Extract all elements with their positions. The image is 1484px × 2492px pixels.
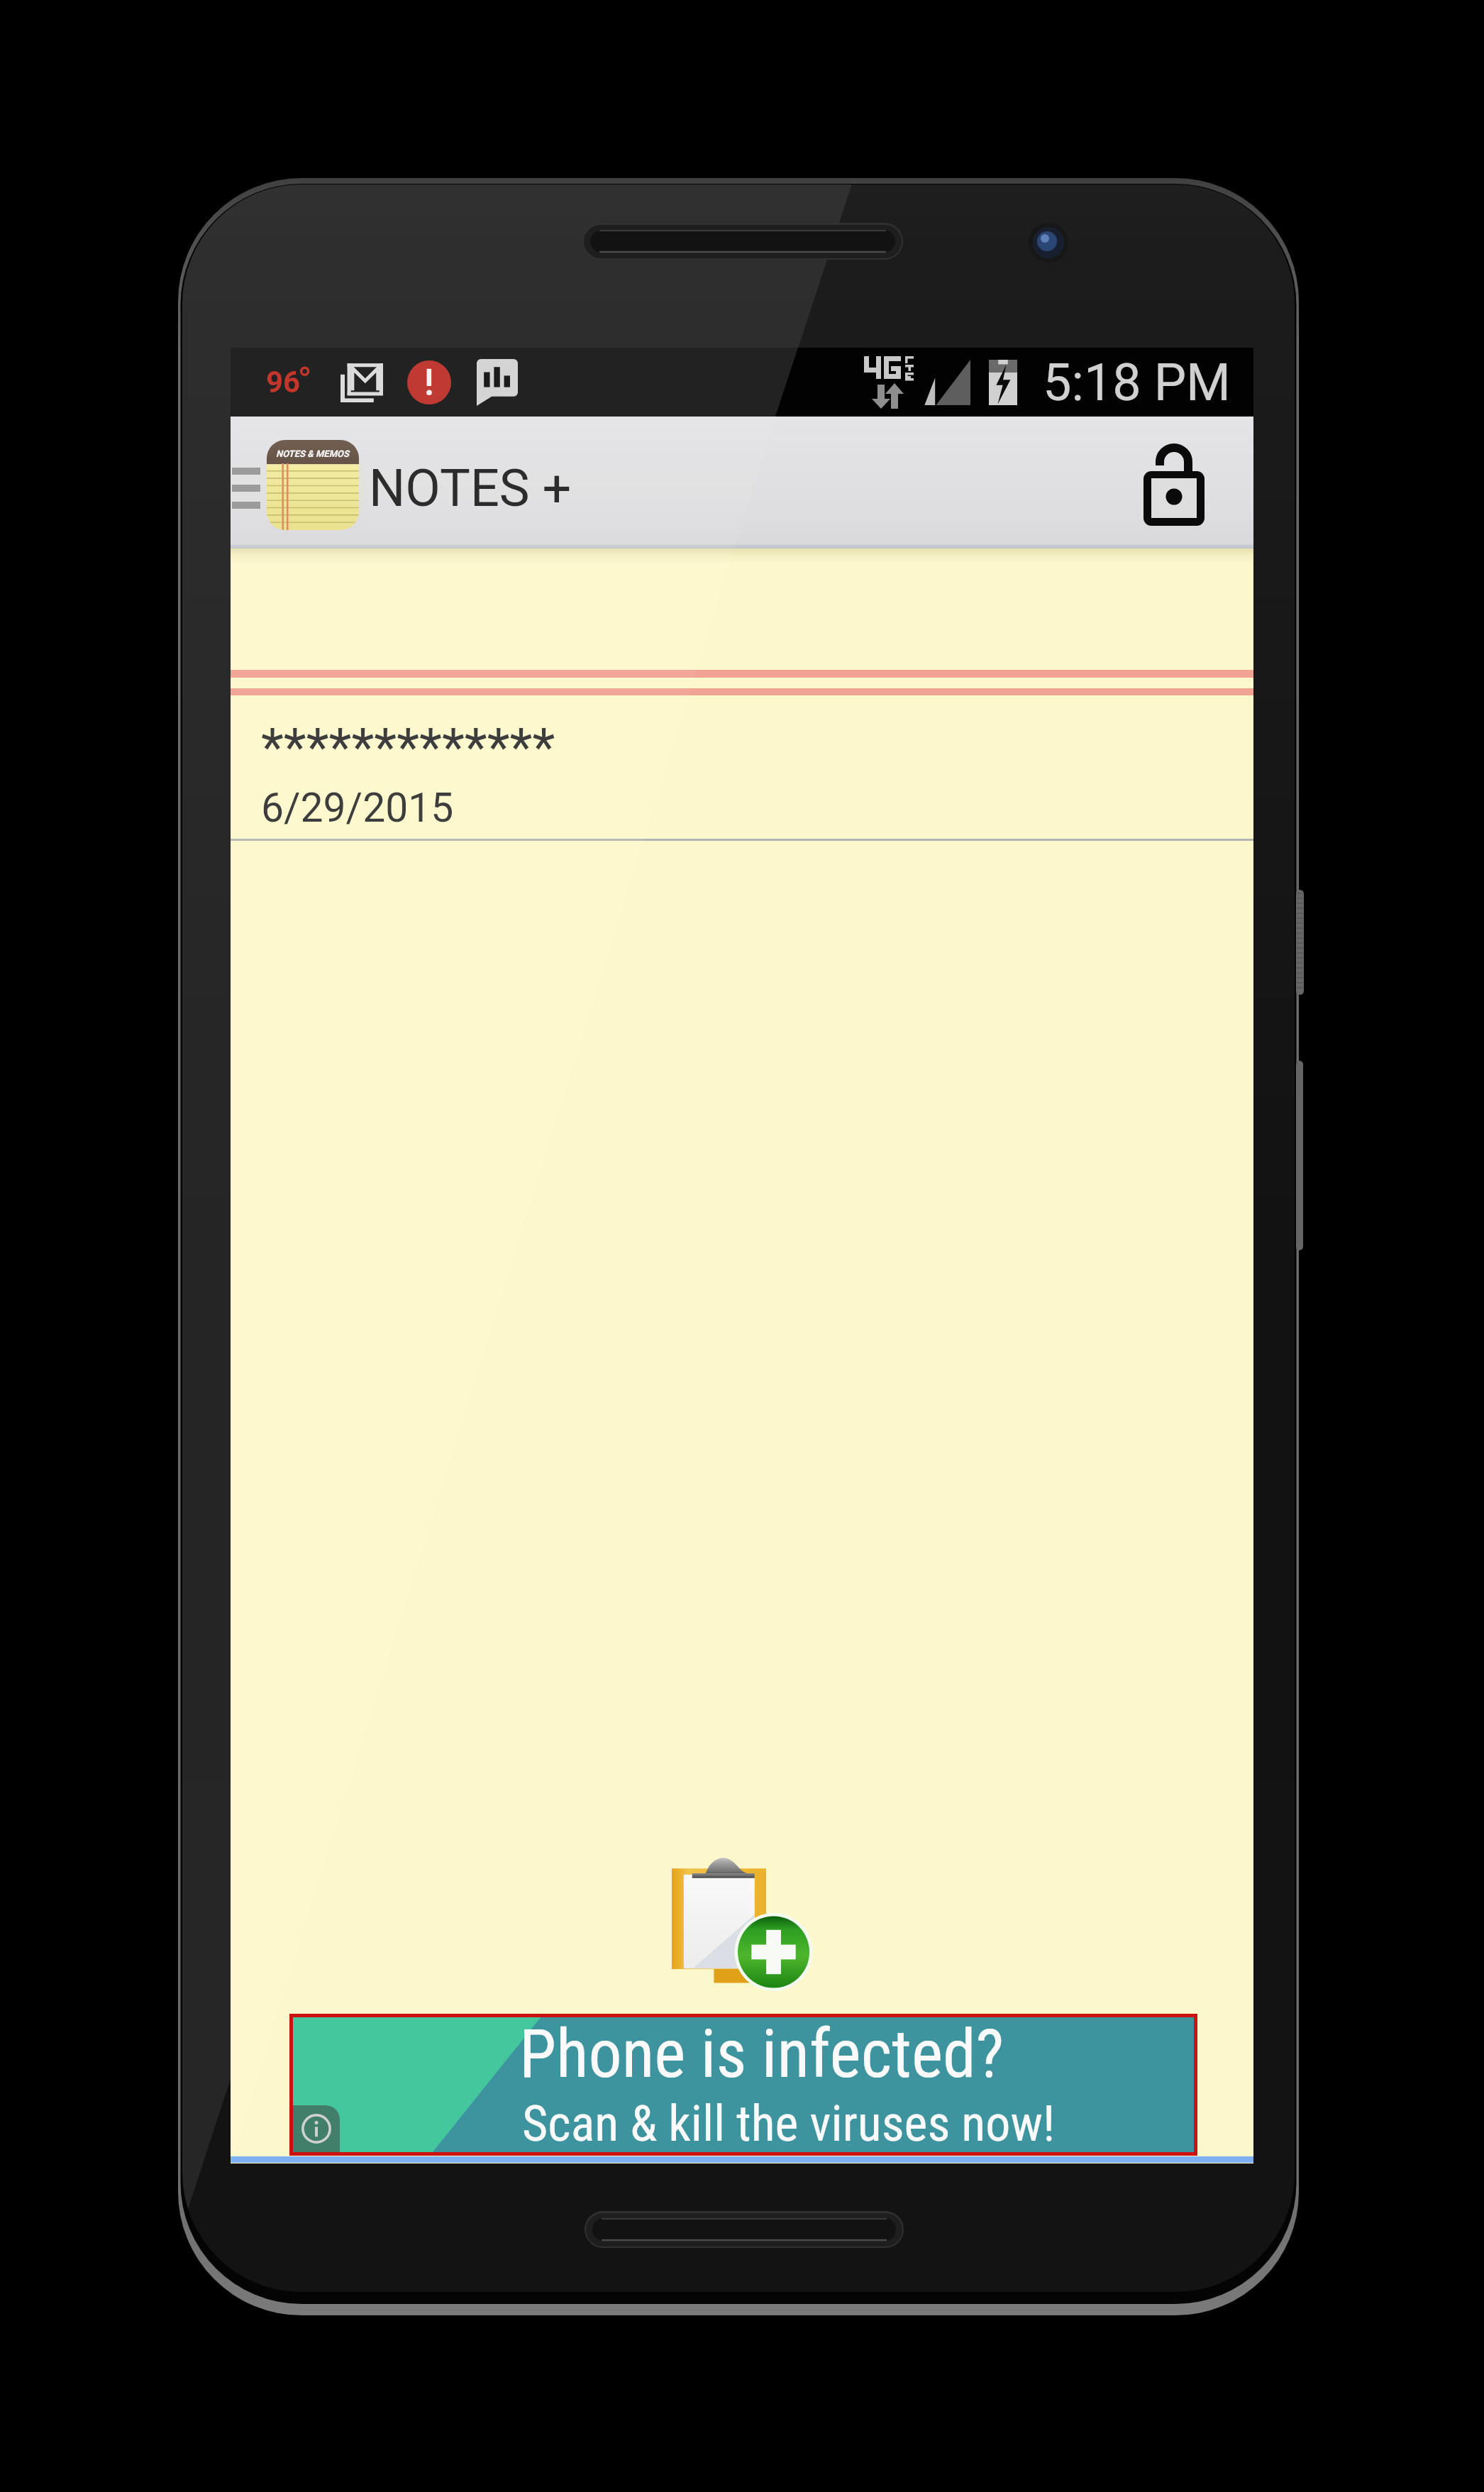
staticText: NOTES + [369, 458, 572, 518]
button[interactable]: Open navigation menu [231, 417, 270, 548]
button[interactable]: Notes and memos [267, 440, 359, 530]
staticText: 6/29/2015 [261, 784, 454, 832]
button[interactable]: Lock notes [1112, 417, 1244, 548]
staticText: 5:18 PM [1043, 353, 1231, 412]
button[interactable]: Phone is infected? [293, 2017, 1194, 2152]
button[interactable]: ************* [231, 696, 1253, 839]
button[interactable]: Add note [672, 1854, 812, 1991]
staticText: 96 [266, 365, 301, 399]
other: Ad information [293, 2105, 340, 2152]
staticText: Scan & kill the viruses now! [522, 2095, 1056, 2153]
staticText: NOTES & MEMOS [276, 448, 350, 459]
staticText: Phone is infected? [519, 2015, 1004, 2093]
staticText: ************* [261, 717, 555, 778]
